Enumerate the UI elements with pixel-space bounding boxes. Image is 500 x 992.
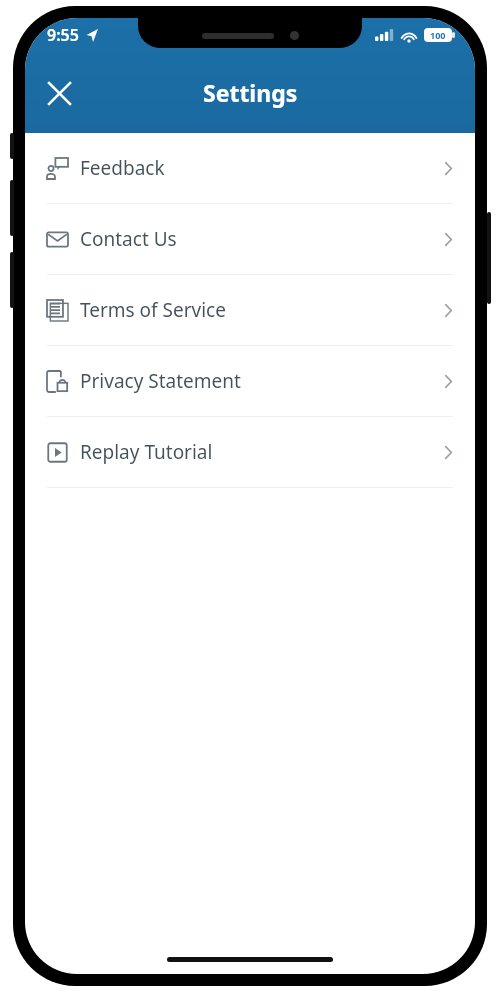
staticText: Privacy Statement [80,368,241,394]
button[interactable]: Close [35,69,83,117]
button[interactable]: Replay Tutorial [25,417,475,487]
button[interactable]: Privacy Statement [25,346,475,416]
button[interactable]: Contact Us [25,204,475,274]
button[interactable]: Feedback [25,133,475,203]
staticText: Contact Us [80,226,177,252]
staticText: Settings [203,77,298,108]
staticText: 100 [430,29,446,41]
button[interactable]: Terms of Service [25,275,475,345]
staticText: Terms of Service [80,297,226,323]
staticText: 9:55 [47,24,79,46]
staticText: Feedback [80,155,165,181]
staticText: Replay Tutorial [80,439,213,465]
